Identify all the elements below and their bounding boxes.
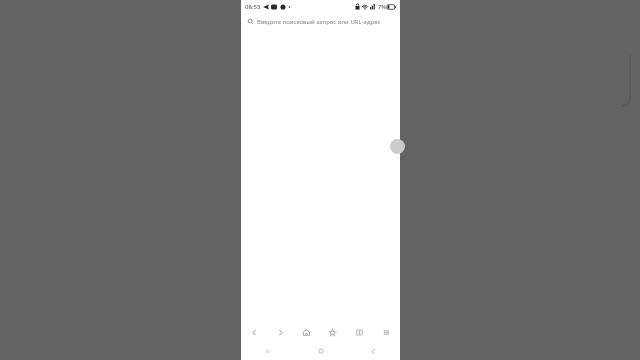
button[interactable]: Forward: [267, 322, 293, 342]
button[interactable]: Home: [294, 342, 347, 360]
staticText: 08:55: [245, 3, 261, 11]
button[interactable]: Recents: [241, 342, 294, 360]
staticText: 7%: [378, 3, 386, 10]
button[interactable]: Bookmark: [319, 322, 346, 342]
button[interactable]: Введите поисковый запрос или URL-адрес: [241, 13, 400, 30]
button[interactable]: Back: [347, 342, 400, 360]
button[interactable]: Floating bubble: [390, 139, 405, 154]
button[interactable]: Menu: [373, 322, 400, 342]
button[interactable]: Back: [241, 322, 267, 342]
button[interactable]: Home: [293, 322, 319, 342]
staticText: Введите поисковый запрос или URL-адрес: [257, 18, 381, 26]
button[interactable]: Tabs: [346, 322, 373, 342]
